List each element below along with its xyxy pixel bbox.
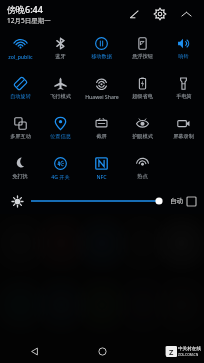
staticText: 飞行模式 — [50, 93, 71, 100]
button[interactable]: 手电筒 — [163, 68, 204, 108]
button[interactable]: Back — [0, 339, 68, 363]
button[interactable]: 截屏 — [81, 108, 122, 148]
button[interactable]: 多屏互动 — [0, 108, 40, 148]
button[interactable]: Auto brightness — [187, 197, 196, 206]
staticText: 超级省电 — [132, 93, 153, 100]
button[interactable]: 热点 — [122, 148, 163, 188]
button[interactable]: 护眼模式 — [122, 108, 163, 148]
staticText: 12月5日星期一 — [7, 16, 51, 25]
staticText: zol_public — [8, 53, 33, 60]
staticText: NFC — [96, 173, 107, 180]
staticText: 免打扰 — [12, 173, 28, 180]
button[interactable]: zol_public — [0, 28, 40, 68]
button[interactable]: 飞行模式 — [40, 68, 81, 108]
button[interactable]: 自动旋转 — [0, 68, 40, 108]
button[interactable]: 移动数据 — [81, 28, 122, 68]
button[interactable]: Home — [68, 339, 136, 363]
button[interactable]: 位置信息 — [40, 108, 81, 148]
button[interactable]: Brightness — [31, 193, 163, 209]
button[interactable]: 响铃 — [163, 28, 204, 68]
staticText: 多屏互动 — [10, 133, 31, 140]
button[interactable]: 4G 开关 — [40, 148, 81, 188]
button[interactable]: NFC — [81, 148, 122, 188]
staticText: 热点 — [137, 173, 148, 180]
staticText: 蓝牙 — [55, 53, 66, 60]
staticText: 自动 — [170, 197, 183, 205]
staticText: ZOL.COM.CN — [178, 352, 199, 357]
button[interactable]: Huawei Share — [81, 68, 122, 108]
staticText: 悬浮按钮 — [132, 53, 153, 60]
staticText: Huawei Share — [85, 93, 119, 100]
button[interactable]: 免打扰 — [0, 148, 40, 188]
staticText: 位置信息 — [50, 133, 71, 140]
button[interactable]: 悬浮按钮 — [122, 28, 163, 68]
button[interactable]: 蓝牙 — [40, 28, 81, 68]
staticText: 截屏 — [96, 133, 107, 140]
button[interactable]: Collapse — [176, 4, 196, 24]
staticText: 响铃 — [178, 53, 189, 60]
staticText: 手电筒 — [176, 93, 192, 100]
staticText: 中关村在线 — [178, 346, 201, 352]
staticText: 自动旋转 — [10, 93, 31, 100]
staticText: 护眼模式 — [132, 133, 153, 140]
button[interactable]: Edit — [124, 4, 144, 24]
staticText: 屏幕录制 — [173, 133, 194, 140]
button[interactable]: Recents — [136, 339, 204, 363]
button[interactable]: 屏幕录制 — [163, 108, 204, 148]
button[interactable]: Settings — [150, 4, 170, 24]
staticText: 傍晚6:44 — [7, 3, 43, 15]
staticText: Z — [169, 347, 174, 357]
staticText: 4G 开关 — [51, 173, 70, 180]
staticText: 移动数据 — [91, 53, 112, 60]
button[interactable]: 超级省电 — [122, 68, 163, 108]
